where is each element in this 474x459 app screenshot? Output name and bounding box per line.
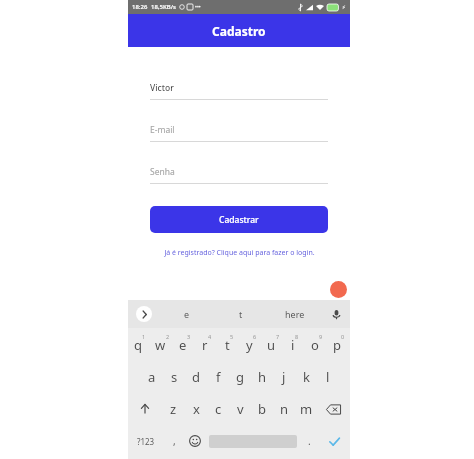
staticText: 9 <box>319 333 323 340</box>
staticText: z <box>170 400 177 418</box>
staticText: x <box>193 400 200 418</box>
button[interactable]: t <box>218 328 240 361</box>
button[interactable]: p <box>328 328 350 361</box>
staticText: Já é registrado? Clique aqui para fazer … <box>164 248 315 258</box>
staticText: t <box>239 308 243 320</box>
staticText: c <box>215 400 222 418</box>
button[interactable]: Expand suggestions <box>128 300 160 328</box>
staticText: w <box>155 336 166 354</box>
button[interactable]: s <box>163 361 185 393</box>
button[interactable]: n <box>273 393 295 425</box>
button[interactable]: a <box>140 361 163 393</box>
button[interactable]: Enter <box>319 425 350 457</box>
button[interactable]: Victor <box>150 79 328 100</box>
staticText: n <box>280 400 289 418</box>
staticText: here <box>285 308 305 320</box>
staticText: d <box>192 368 200 386</box>
button[interactable]: Senha <box>150 163 328 184</box>
button[interactable]: k <box>295 361 317 393</box>
staticText: . <box>308 434 311 448</box>
staticText: ••• <box>195 4 201 11</box>
staticText: q <box>134 336 142 354</box>
button[interactable]: v <box>229 393 251 425</box>
staticText: t <box>225 336 230 354</box>
staticText: 7 <box>276 333 280 340</box>
button[interactable]: t <box>214 300 268 328</box>
staticText: y <box>246 336 253 354</box>
staticText: 6 <box>253 333 257 340</box>
staticText: 0 <box>341 333 345 340</box>
button[interactable]: o <box>306 328 328 361</box>
button[interactable]: h <box>251 361 273 393</box>
button[interactable]: u <box>262 328 284 361</box>
staticText: 4 <box>208 333 212 340</box>
staticText: f <box>216 368 221 386</box>
button[interactable]: , <box>164 425 184 457</box>
staticText: p <box>333 336 341 354</box>
staticText: 18:26 <box>132 3 148 11</box>
button[interactable]: w <box>151 328 174 361</box>
staticText: i <box>291 336 295 354</box>
button[interactable]: Voice input <box>322 300 350 328</box>
button[interactable]: y <box>240 328 262 361</box>
staticText: s <box>171 368 178 386</box>
button[interactable]: r <box>196 328 218 361</box>
button[interactable]: l <box>317 361 339 393</box>
button[interactable]: E-mail <box>150 121 328 142</box>
button[interactable]: f <box>207 361 229 393</box>
staticText: Cadastrar <box>219 214 259 226</box>
staticText: 3 <box>187 333 191 340</box>
button[interactable]: e <box>174 328 196 361</box>
button[interactable]: e <box>160 300 214 328</box>
button[interactable]: m <box>295 393 317 425</box>
staticText: ⚡ <box>342 4 346 10</box>
button[interactable]: q <box>128 328 151 361</box>
button[interactable]: Shift <box>128 393 162 425</box>
button[interactable]: Emoji <box>184 425 206 457</box>
staticText: , <box>173 434 176 448</box>
button[interactable]: Notification badge <box>330 281 347 298</box>
staticText: a <box>148 368 156 386</box>
staticText: 8 <box>295 333 299 340</box>
staticText: v <box>237 400 244 418</box>
staticText: Cadastro <box>212 23 266 39</box>
button[interactable]: Space <box>206 425 299 457</box>
button[interactable]: j <box>273 361 295 393</box>
staticText: 1 <box>142 333 146 340</box>
staticText: ?123 <box>137 436 155 447</box>
button[interactable]: g <box>229 361 251 393</box>
button[interactable]: c <box>207 393 229 425</box>
staticText: 2 <box>166 333 170 340</box>
staticText: 5 <box>230 333 234 340</box>
button[interactable]: d <box>185 361 207 393</box>
button[interactable]: here <box>268 300 322 328</box>
staticText: l <box>326 368 330 386</box>
staticText: u <box>267 336 276 354</box>
button[interactable]: Já é registrado? Clique aqui para fazer … <box>150 248 328 258</box>
staticText: g <box>236 368 244 386</box>
staticText: k <box>303 368 310 386</box>
staticText: r <box>202 336 208 354</box>
staticText: e <box>184 308 190 320</box>
button[interactable]: x <box>185 393 207 425</box>
button[interactable]: b <box>251 393 273 425</box>
staticText: m <box>300 400 313 418</box>
staticText: e <box>179 336 187 354</box>
staticText: o <box>311 336 319 354</box>
button[interactable]: . <box>299 425 319 457</box>
button[interactable]: Backspace <box>317 393 350 425</box>
staticText: b <box>258 400 266 418</box>
button[interactable]: z <box>162 393 185 425</box>
button[interactable]: ?123 <box>128 425 164 457</box>
staticText: E-mail <box>150 124 175 136</box>
staticText: Victor <box>150 82 174 94</box>
staticText: 18,5KB/s <box>151 3 176 11</box>
button[interactable]: i <box>284 328 306 361</box>
staticText: j <box>282 368 286 386</box>
staticText: Senha <box>150 166 175 178</box>
button[interactable]: Cadastrar <box>150 206 328 233</box>
staticText: h <box>258 368 267 386</box>
